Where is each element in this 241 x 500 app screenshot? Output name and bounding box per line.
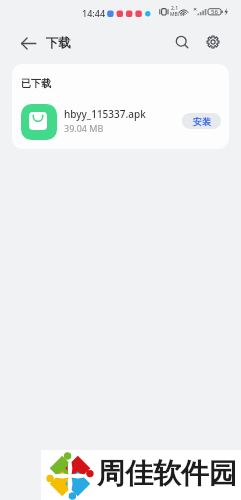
staticText: 周佳软件园: [97, 456, 237, 491]
staticText: 14:44: [82, 7, 106, 19]
staticText: MB/s: [170, 11, 183, 18]
button[interactable]: Back: [16, 31, 40, 55]
staticText: 56: [211, 8, 218, 16]
staticText: 下载: [46, 35, 71, 51]
staticText: 已下载: [21, 77, 51, 90]
staticText: hbyy_115337.apk: [64, 107, 146, 121]
staticText: 安装: [193, 116, 211, 127]
button[interactable]: Search: [171, 31, 195, 55]
staticText: 39.04 MB: [64, 122, 104, 134]
button[interactable]: hbyy_115337.apk: [12, 92, 229, 149]
staticText: 2.1: [171, 5, 179, 12]
button[interactable]: 安装: [182, 113, 221, 129]
button[interactable]: Settings: [201, 30, 225, 54]
